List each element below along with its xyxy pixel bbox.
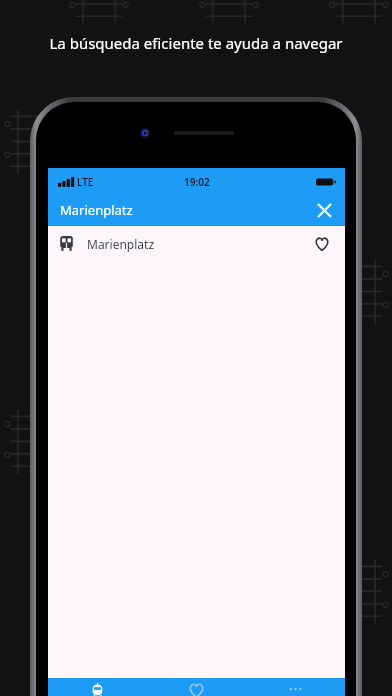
button[interactable]: Estaciones xyxy=(48,678,147,696)
button[interactable]: Marienplatz xyxy=(48,226,345,261)
button[interactable]: Favoritos xyxy=(147,678,246,696)
button[interactable]: Más xyxy=(246,678,345,696)
staticText: LTE xyxy=(77,175,94,189)
staticText: Marienplatz xyxy=(87,236,155,252)
staticText: Marienplatz xyxy=(60,201,133,219)
staticText: 19:02 xyxy=(184,175,210,189)
staticText: La búsqueda eficiente te ayuda a navegar xyxy=(0,33,392,53)
button[interactable]: Add to favorites xyxy=(310,232,334,256)
button[interactable]: Clear search xyxy=(311,197,337,223)
